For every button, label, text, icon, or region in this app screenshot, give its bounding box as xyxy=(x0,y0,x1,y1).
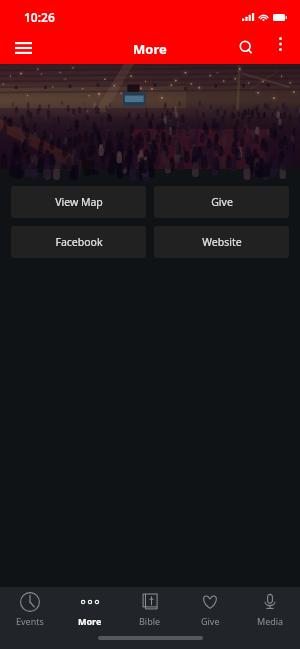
button[interactable]: View Map xyxy=(11,186,146,218)
staticText: More xyxy=(78,615,102,627)
staticText: Events xyxy=(16,615,44,627)
button[interactable]: Give xyxy=(154,186,289,218)
staticText: Media xyxy=(257,615,284,627)
staticText: 10:26 xyxy=(24,9,55,25)
button[interactable]: Give xyxy=(180,587,240,629)
staticText: Give xyxy=(201,615,220,627)
button[interactable]: Events xyxy=(0,587,60,629)
button[interactable]: Facebook xyxy=(11,226,146,258)
button[interactable]: More options xyxy=(266,30,294,58)
staticText: Facebook xyxy=(55,235,103,249)
staticText: Website xyxy=(202,235,242,249)
button[interactable]: Media xyxy=(240,587,300,629)
button[interactable]: More xyxy=(60,587,120,629)
button[interactable]: Search xyxy=(229,30,263,64)
button[interactable]: Website xyxy=(154,226,289,258)
staticText: View Map xyxy=(55,195,103,209)
staticText: Bible xyxy=(139,615,161,627)
staticText: More xyxy=(133,40,167,58)
button[interactable]: Menu xyxy=(5,30,41,66)
staticText: Give xyxy=(211,195,233,209)
button[interactable]: Bible xyxy=(120,587,180,629)
